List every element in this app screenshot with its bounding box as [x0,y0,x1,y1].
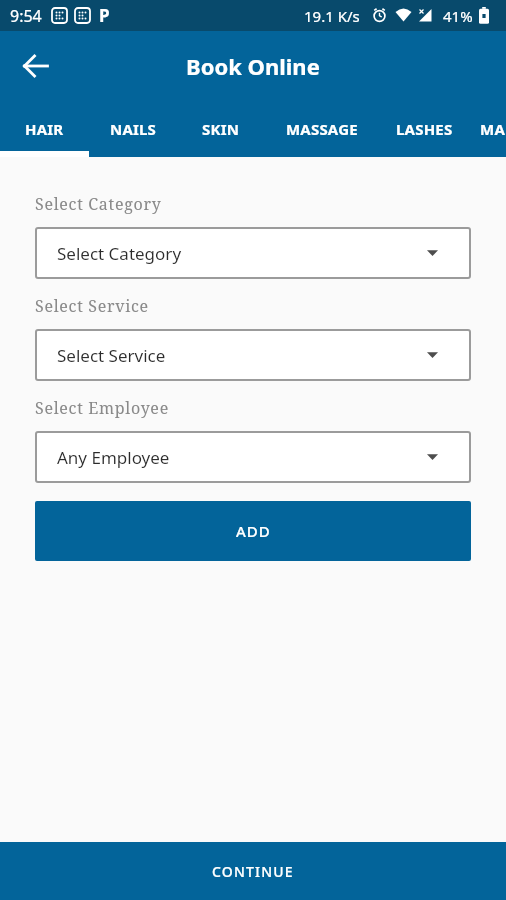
button[interactable]: MASSAGE [265,100,379,157]
staticText: Select Employee [35,397,169,419]
button[interactable]: NAILS [89,100,177,157]
staticText: NAILS [110,119,157,139]
button[interactable] [8,38,64,94]
staticText: MAKEUP [480,119,506,139]
staticText: MASSAGE [286,119,358,139]
staticText: Select Category [35,193,162,215]
button[interactable]: CONTINUE [0,842,506,900]
button[interactable]: Any Employee [35,431,471,483]
staticText: ADD [236,521,271,541]
staticText: Select Service [57,344,166,367]
staticText: Any Employee [57,446,170,469]
staticText: LASHES [396,119,453,139]
staticText: SKIN [202,119,240,139]
staticText: P [99,4,110,27]
button[interactable]: MAKEUP [469,100,506,157]
staticText: Select Service [35,295,149,317]
staticText: 41% [443,6,473,26]
staticText: CONTINUE [212,862,294,881]
staticText: Book Online [186,51,320,81]
staticText: 19.1 K/s [304,6,360,26]
staticText: HAIR [25,119,64,139]
button[interactable]: SKIN [177,100,265,157]
staticText: Select Category [57,242,182,265]
button[interactable]: LASHES [379,100,469,157]
button[interactable]: Select Category [35,227,471,279]
button[interactable]: HAIR [0,100,89,157]
button[interactable]: ADD [35,501,471,561]
button[interactable]: Select Service [35,329,471,381]
staticText: 9:54 [10,5,42,27]
